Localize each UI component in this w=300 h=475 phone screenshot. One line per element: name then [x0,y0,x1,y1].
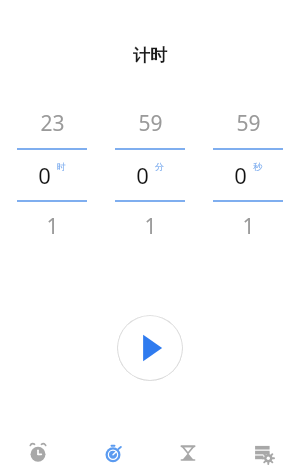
staticText: 59 [138,109,163,138]
staticText: 计时 [133,45,167,66]
button[interactable]: Start [117,315,183,381]
staticText: 时 [57,161,66,172]
button[interactable]: 0 [202,150,294,200]
staticText: 0 [38,160,51,190]
button[interactable]: Timer [150,431,225,475]
staticText: 分 [155,161,164,172]
staticText: 1 [242,212,255,241]
staticText: 0 [234,160,247,190]
button[interactable]: World clock settings [225,431,300,475]
button[interactable]: 0 [6,150,98,200]
staticText: 秒 [253,161,262,172]
staticText: 0 [136,160,149,190]
staticText: 1 [144,212,157,241]
staticText: 59 [236,109,261,138]
staticText: 1 [46,212,59,241]
button[interactable]: 0 [104,150,196,200]
button[interactable]: Stopwatch [75,431,150,475]
button[interactable]: Alarm [0,431,75,475]
staticText: 23 [40,109,65,138]
